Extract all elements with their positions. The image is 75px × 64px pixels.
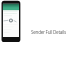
staticText: Sender Full Details (31, 29, 66, 35)
button[interactable]: App screenshot preview (0, 0, 75, 64)
